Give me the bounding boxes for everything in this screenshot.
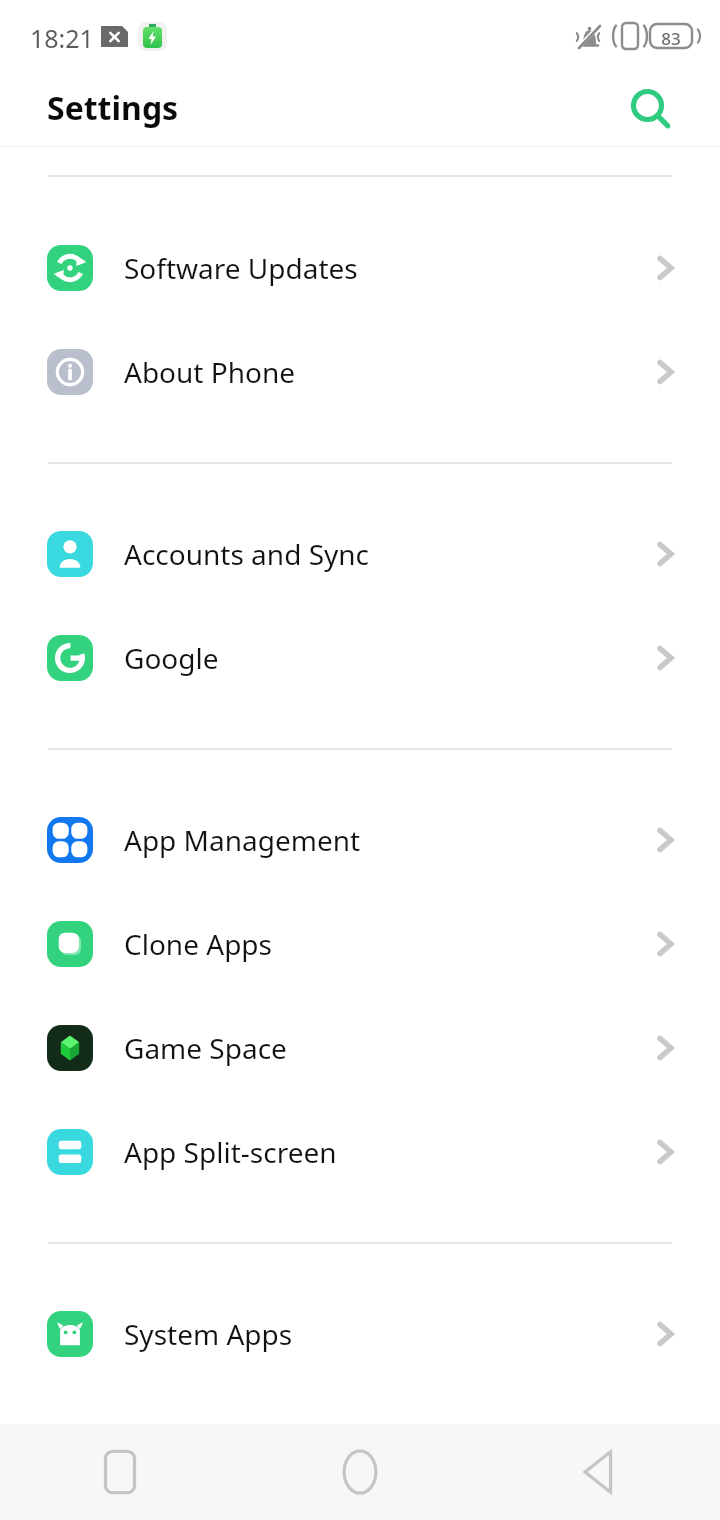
button[interactable]: About Phone xyxy=(0,320,720,424)
staticText: App Management xyxy=(124,821,361,859)
staticText: Game Space xyxy=(124,1029,287,1067)
staticText: Software Updates xyxy=(124,249,358,287)
button[interactable]: System Apps xyxy=(0,1282,720,1386)
button[interactable]: Accounts and Sync xyxy=(0,502,720,606)
button[interactable]: App Management xyxy=(0,788,720,892)
button[interactable]: Software Updates xyxy=(0,216,720,320)
staticText: Google xyxy=(124,639,219,677)
button[interactable]: Google xyxy=(0,606,720,710)
staticText: System Apps xyxy=(124,1315,293,1353)
staticText: Accounts and Sync xyxy=(124,535,370,573)
staticText: Clone Apps xyxy=(124,925,272,963)
staticText: 83 xyxy=(658,27,684,50)
button[interactable]: Recent apps xyxy=(70,1424,170,1520)
staticText: 18:21 xyxy=(30,21,94,55)
button[interactable]: App Split-screen xyxy=(0,1100,720,1204)
button[interactable]: Home xyxy=(310,1424,410,1520)
staticText: App Split-screen xyxy=(124,1133,337,1171)
staticText: Settings xyxy=(47,86,179,130)
button[interactable]: Search settings xyxy=(620,78,680,138)
button[interactable]: Back xyxy=(550,1424,650,1520)
button[interactable]: Game Space xyxy=(0,996,720,1100)
staticText: About Phone xyxy=(124,353,296,391)
button[interactable]: Clone Apps xyxy=(0,892,720,996)
